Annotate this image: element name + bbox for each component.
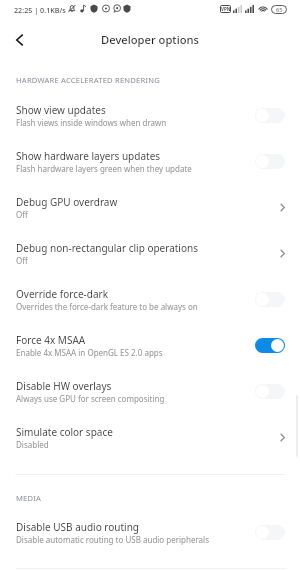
staticText: Enable 4x MSAA in OpenGL ES 2.0 apps — [16, 347, 163, 358]
button[interactable]: Debug GPU overdraw — [0, 184, 300, 230]
staticText: Flash hardware layers green when they up… — [16, 163, 192, 174]
staticText: Override force-dark — [16, 287, 109, 301]
staticText: Show view updates — [16, 103, 106, 117]
staticText: Disable HW overlays — [16, 379, 112, 393]
staticText: Overrides the force-dark feature to be a… — [16, 301, 198, 312]
button[interactable]: Show view updates, off — [255, 108, 285, 123]
staticText: Flash views inside windows when drawn — [16, 117, 167, 128]
staticText: Disabled — [16, 439, 49, 450]
staticText: Off — [16, 209, 28, 220]
button[interactable]: Simulate color space — [0, 414, 300, 460]
button[interactable]: Show hardware layers updates — [0, 138, 300, 184]
button[interactable]: Debug non-rectangular clip operations — [0, 230, 300, 276]
staticText: Disable USB audio routing — [16, 520, 139, 534]
staticText: 22:25 | 0.1KB/s — [14, 5, 66, 15]
button[interactable]: Override force-dark — [0, 276, 300, 322]
staticText: 65 — [276, 6, 283, 14]
staticText: MEDIA — [16, 493, 42, 503]
staticText: Simulate color space — [16, 425, 113, 439]
button[interactable]: Show hardware layers updates, off — [255, 154, 285, 169]
staticText: Developer options — [0, 32, 300, 47]
staticText: Always use GPU for screen compositing — [16, 393, 165, 404]
staticText: VPN — [221, 6, 231, 12]
button[interactable]: Disable HW overlays — [0, 368, 300, 414]
staticText: Disable automatic routing to USB audio p… — [16, 534, 209, 545]
staticText: HARDWARE ACCELERATED RENDERING — [16, 75, 160, 85]
button[interactable]: Override force-dark, off — [255, 292, 285, 307]
button[interactable]: Disable USB audio routing — [0, 509, 300, 555]
button[interactable]: Back — [0, 21, 38, 59]
button[interactable]: Disable USB audio routing, off — [255, 525, 285, 540]
button[interactable]: Disable HW overlays, off — [255, 384, 285, 399]
staticText: Debug GPU overdraw — [16, 195, 118, 209]
staticText: Force 4x MSAA — [16, 333, 86, 347]
staticText: Off — [16, 255, 28, 266]
staticText: Debug non-rectangular clip operations — [16, 241, 198, 255]
button[interactable]: Force 4x MSAA, on — [255, 338, 285, 353]
staticText: Show hardware layers updates — [16, 149, 161, 163]
button[interactable]: Show view updates — [0, 92, 300, 138]
button[interactable]: Force 4x MSAA — [0, 322, 300, 368]
